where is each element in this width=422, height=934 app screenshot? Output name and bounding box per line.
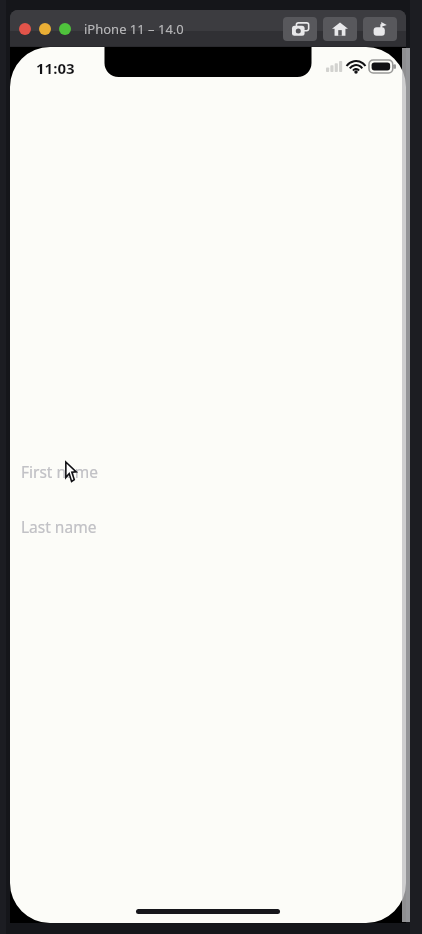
button[interactable]: Last name	[10, 508, 406, 544]
button[interactable]: First name	[10, 453, 406, 489]
staticText: First name	[21, 461, 99, 482]
staticText: Last name	[21, 516, 97, 537]
staticText: 11:03	[36, 58, 75, 78]
button[interactable]: Share	[363, 17, 397, 41]
button[interactable]: Home	[323, 17, 357, 41]
button[interactable]: Close	[19, 23, 31, 35]
button[interactable]: Screenshot	[283, 17, 317, 41]
button[interactable]: Minimize	[39, 23, 51, 35]
staticText: iPhone 11 – 14.0	[84, 20, 184, 38]
button[interactable]: Zoom	[59, 23, 71, 35]
